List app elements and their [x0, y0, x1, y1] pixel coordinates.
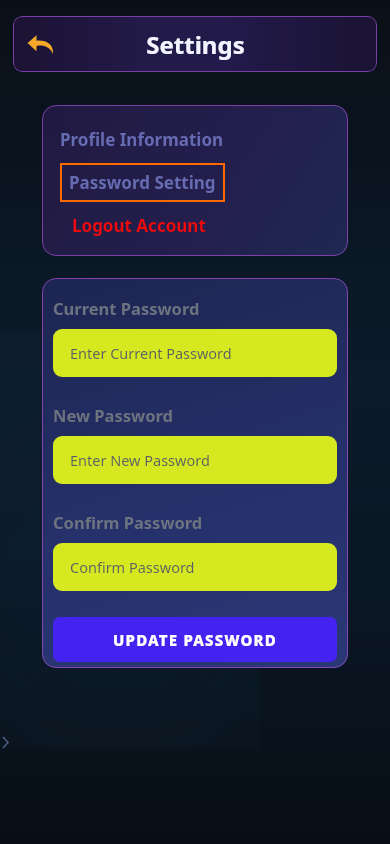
staticText: Confirm Password [70, 557, 195, 577]
button[interactable]: Password Setting [60, 163, 225, 202]
button[interactable]: Profile Information [60, 125, 224, 154]
staticText: Current Password [53, 297, 200, 319]
button[interactable]: UPDATE PASSWORD [53, 617, 337, 662]
staticText: Profile Information [60, 128, 224, 151]
staticText: Enter Current Password [70, 343, 232, 363]
staticText: New Password [53, 404, 173, 426]
staticText: Logout Account [72, 214, 206, 237]
button[interactable]: Logout Account [60, 213, 206, 240]
staticText: Password Setting [69, 171, 216, 194]
staticText: Settings [146, 28, 245, 61]
button[interactable]: Confirm Password [53, 543, 337, 591]
button[interactable]: Back [19, 22, 63, 66]
staticText: UPDATE PASSWORD [113, 630, 277, 650]
button[interactable]: Enter Current Password [53, 329, 337, 377]
staticText: Enter New Password [70, 450, 210, 470]
staticText: Confirm Password [53, 511, 203, 533]
button[interactable]: Enter New Password [53, 436, 337, 484]
